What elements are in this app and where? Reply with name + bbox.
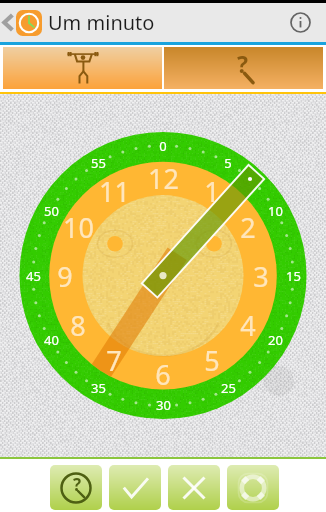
button[interactable]: Check xyxy=(109,465,161,510)
staticText: 0 xyxy=(159,137,167,155)
button[interactable]: Back xyxy=(0,9,155,36)
staticText: 20 xyxy=(268,331,283,349)
staticText: 9 xyxy=(57,258,73,295)
staticText: 15 xyxy=(286,267,301,285)
other: Back xyxy=(3,15,14,30)
staticText: 11 xyxy=(99,173,130,210)
staticText: 7 xyxy=(106,342,122,379)
staticText: 35 xyxy=(91,379,106,397)
staticText: 5 xyxy=(204,342,220,379)
staticText: 2 xyxy=(240,209,256,246)
button[interactable]: Reset xyxy=(227,465,279,510)
staticText: 50 xyxy=(44,202,59,220)
staticText: 10 xyxy=(63,209,94,246)
staticText: ? xyxy=(237,48,248,79)
staticText: 30 xyxy=(156,396,171,414)
staticText: 3 xyxy=(253,258,269,295)
staticText: 12 xyxy=(148,160,179,197)
staticText: 8 xyxy=(70,307,86,344)
staticText: 10 xyxy=(268,202,283,220)
staticText: ? xyxy=(73,473,82,496)
staticText: 6 xyxy=(155,356,171,393)
button[interactable]: Cancel xyxy=(168,465,220,510)
staticText: 55 xyxy=(91,154,106,172)
staticText: 45 xyxy=(26,267,41,285)
button[interactable]: Exercise xyxy=(3,47,162,89)
staticText: 40 xyxy=(44,331,59,349)
staticText: Um minuto xyxy=(48,9,155,36)
button[interactable]: Help xyxy=(164,47,323,89)
staticText: 1 xyxy=(204,173,220,210)
staticText: 25 xyxy=(221,379,236,397)
staticText: 4 xyxy=(240,307,256,344)
button[interactable]: Info xyxy=(281,3,320,42)
button[interactable]: Hint xyxy=(50,465,102,510)
staticText: 5 xyxy=(224,154,232,172)
